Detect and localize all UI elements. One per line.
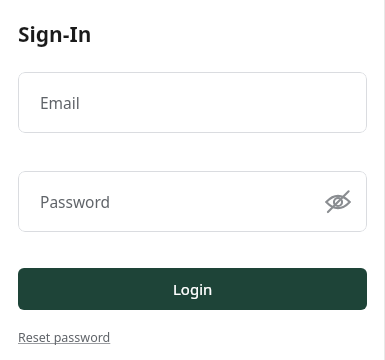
staticText: Reset password	[18, 329, 111, 346]
staticText: Sign-In	[18, 20, 92, 49]
button[interactable]: Login	[18, 268, 367, 310]
staticText: Login	[173, 279, 213, 299]
staticText: Email	[40, 92, 353, 113]
button[interactable]: Reset password	[18, 329, 111, 346]
button[interactable]: Password field	[18, 171, 367, 232]
button[interactable]: Email field	[18, 72, 367, 133]
button[interactable]: Show password	[323, 187, 353, 217]
staticText: Password	[40, 191, 323, 212]
